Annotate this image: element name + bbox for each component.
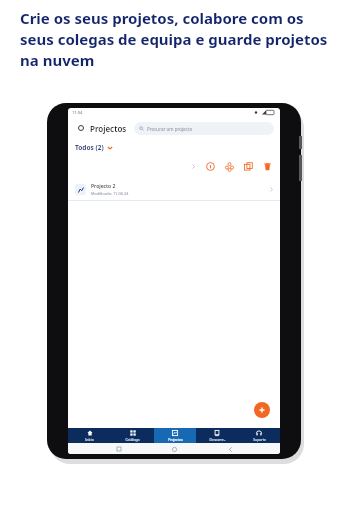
button[interactable]: Suporte: [238, 428, 280, 443]
staticText: Crie os seus projetos, colabore com os s…: [20, 8, 334, 71]
staticText: Modificado: 11-06-24: [91, 191, 129, 196]
staticText: Catálogo: [125, 437, 140, 442]
button[interactable]: Projecto 2: [68, 178, 280, 200]
staticText: Procurar um projecto: [147, 126, 193, 132]
staticText: Início: [85, 437, 94, 442]
button[interactable]: Recentes: [114, 444, 124, 454]
button[interactable]: Início: [169, 444, 179, 454]
button[interactable]: Voltar: [225, 444, 235, 454]
button[interactable]: Eliminar: [261, 160, 274, 173]
button[interactable]: Procurar um projecto: [134, 122, 274, 135]
staticText: Projecto 2: [91, 183, 116, 190]
button[interactable]: Descarre..: [196, 428, 238, 443]
button[interactable]: Expandir: [188, 161, 198, 171]
staticText: Descarre..: [209, 437, 226, 442]
button[interactable]: Menu: [74, 121, 88, 135]
staticText: Projectos: [168, 437, 183, 442]
button[interactable]: Partilhar: [223, 160, 236, 173]
staticText: 11:04: [72, 110, 83, 115]
button[interactable]: Informação: [204, 160, 217, 173]
button[interactable]: Projectos: [154, 428, 196, 443]
button[interactable]: Catálogo: [111, 428, 154, 443]
button[interactable]: Copiar: [242, 160, 255, 173]
button[interactable]: Novo projeto: [254, 402, 270, 418]
staticText: Suporte: [253, 437, 266, 442]
button[interactable]: Início: [68, 428, 111, 443]
button[interactable]: Todos (2): [75, 143, 113, 152]
staticText: Todos (2): [75, 143, 104, 152]
staticText: Projectos: [90, 123, 127, 134]
